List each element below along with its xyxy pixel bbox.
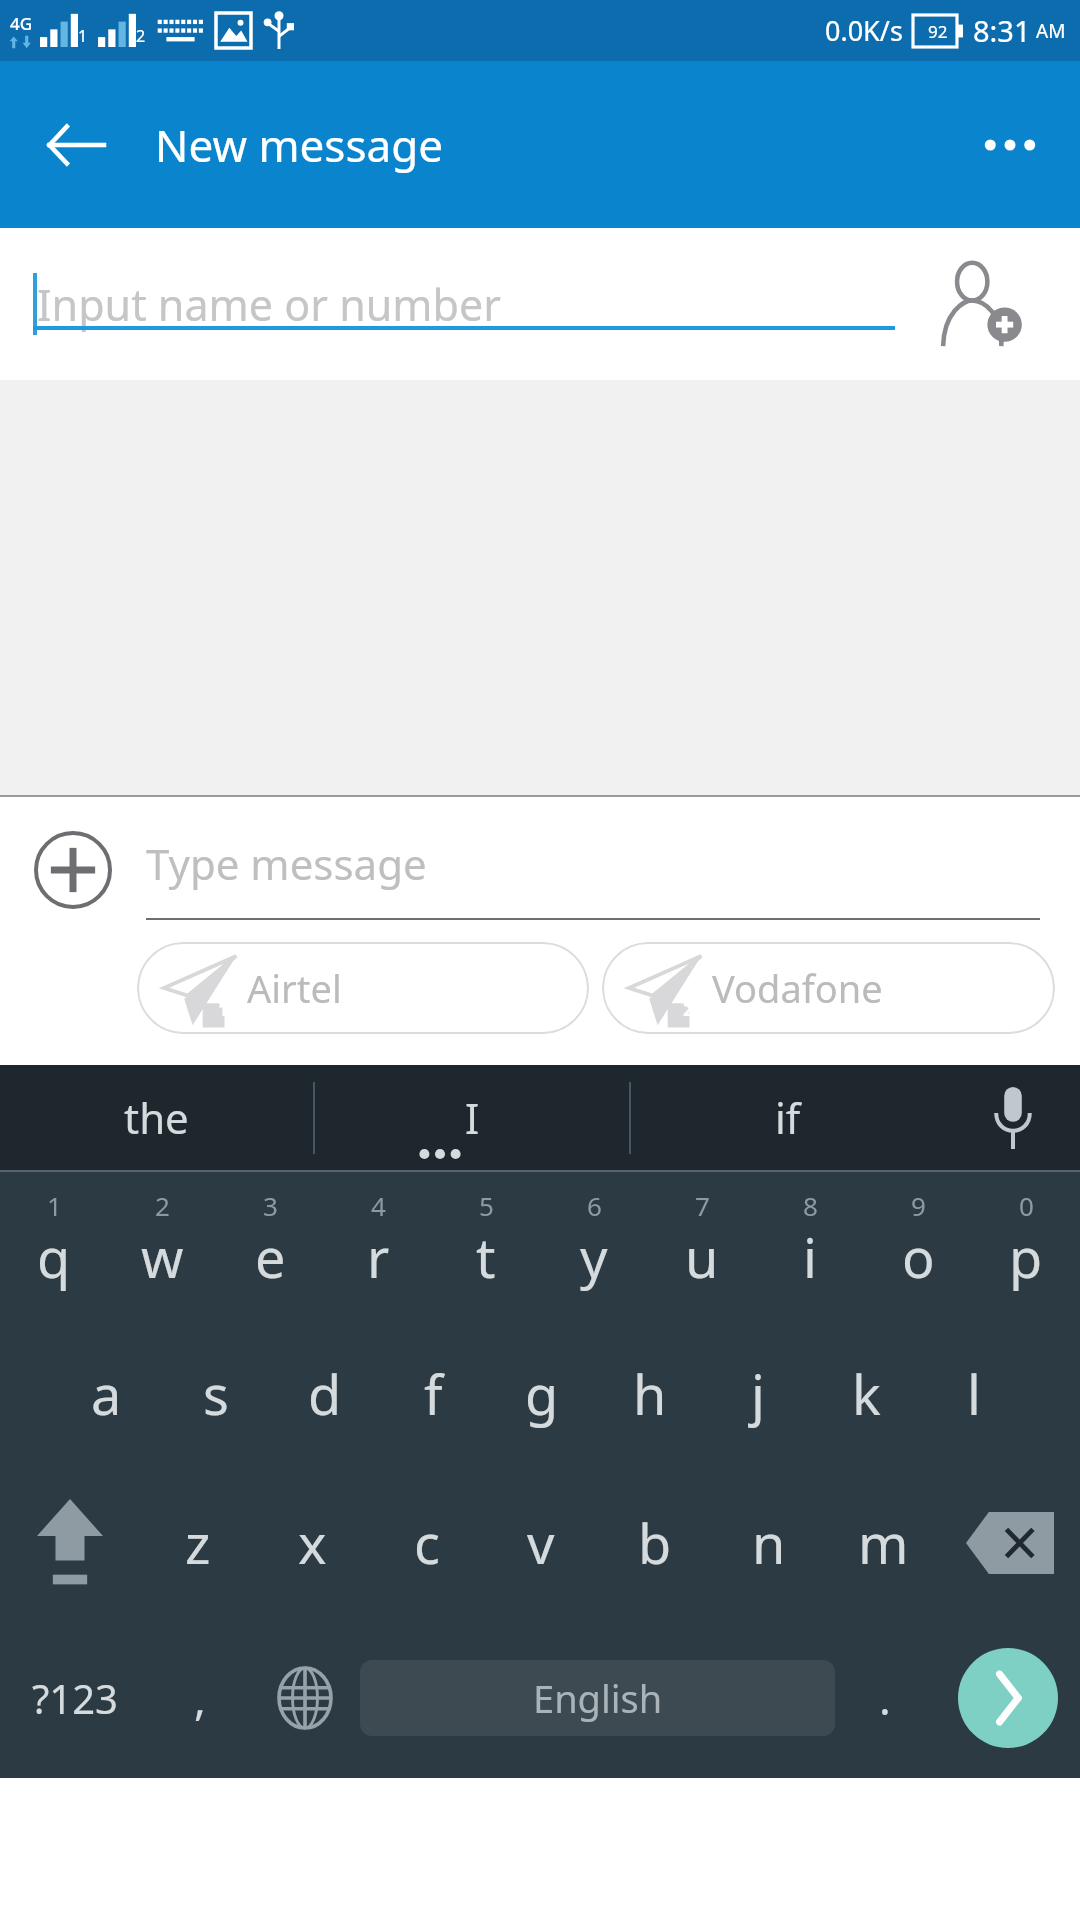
button[interactable]: 4 <box>324 1172 432 1320</box>
button[interactable]: Change language <box>250 1618 360 1778</box>
staticText: 4 <box>371 1188 386 1223</box>
staticText: t <box>476 1220 496 1294</box>
button[interactable]: d <box>270 1320 379 1468</box>
staticText: a <box>91 1357 122 1431</box>
staticText: 0 <box>1019 1188 1034 1223</box>
staticText: v <box>527 1506 555 1580</box>
staticText: h <box>633 1357 667 1431</box>
staticText: 92 <box>928 20 948 43</box>
button[interactable]: 2 <box>108 1172 216 1320</box>
button[interactable]: Back <box>30 100 120 190</box>
staticText: o <box>902 1220 935 1294</box>
staticText: x <box>298 1506 327 1580</box>
staticText: 5 <box>479 1188 494 1223</box>
button[interactable]: 2 <box>602 942 1055 1034</box>
staticText: s <box>203 1357 229 1431</box>
button[interactable]: if <box>631 1065 945 1170</box>
button[interactable]: Input name or number <box>33 273 895 335</box>
staticText: Vodafone <box>712 962 883 1014</box>
staticText: 2 <box>155 1188 170 1223</box>
button[interactable]: 9 <box>864 1172 972 1320</box>
button[interactable]: j <box>704 1320 812 1468</box>
button[interactable]: ?123 <box>0 1618 150 1778</box>
button[interactable]: 7 <box>648 1172 756 1320</box>
button[interactable]: 0 <box>972 1172 1080 1320</box>
button[interactable]: b <box>598 1468 712 1618</box>
button[interactable]: x <box>255 1468 370 1618</box>
staticText: 8:31 <box>973 11 1031 50</box>
staticText: 9 <box>911 1188 926 1223</box>
button[interactable]: 6 <box>540 1172 648 1320</box>
staticText: New message <box>155 115 444 175</box>
button[interactable]: Voice input <box>945 1065 1080 1170</box>
button[interactable]: c <box>370 1468 484 1618</box>
staticText: 0.0K/s <box>825 12 903 49</box>
staticText: n <box>752 1506 786 1580</box>
staticText: f <box>424 1357 443 1431</box>
staticText: j <box>751 1357 765 1431</box>
button[interactable]: 1 <box>0 1172 108 1320</box>
staticText: c <box>414 1506 440 1580</box>
staticText: g <box>525 1357 559 1431</box>
staticText: 2 <box>683 997 694 1022</box>
staticText: AM <box>1036 18 1066 44</box>
button[interactable]: Backspace <box>940 1468 1080 1618</box>
staticText: if <box>775 1089 801 1146</box>
button[interactable]: k <box>812 1320 920 1468</box>
button[interactable]: 5 <box>432 1172 540 1320</box>
button[interactable]: Shift <box>0 1468 140 1618</box>
staticText: Type message <box>146 835 427 892</box>
staticText: i <box>803 1220 817 1294</box>
button[interactable]: Type message <box>146 797 1040 942</box>
button[interactable]: Add attachment <box>28 825 118 915</box>
button[interactable]: a <box>52 1320 161 1468</box>
button[interactable]: 8 <box>756 1172 864 1320</box>
button[interactable]: 3 <box>216 1172 324 1320</box>
button[interactable]: I <box>315 1065 629 1170</box>
staticText: e <box>255 1220 286 1294</box>
button[interactable]: Add contact <box>925 249 1035 359</box>
button[interactable]: z <box>140 1468 255 1618</box>
staticText: l <box>967 1357 981 1431</box>
button[interactable]: m <box>826 1468 940 1618</box>
button[interactable]: the <box>0 1065 313 1170</box>
staticText: b <box>638 1506 672 1580</box>
staticText: Input name or number <box>37 275 501 334</box>
button[interactable]: n <box>712 1468 826 1618</box>
button[interactable]: l <box>920 1320 1028 1468</box>
staticText: q <box>37 1220 71 1294</box>
staticText: I <box>465 1089 480 1146</box>
staticText: 6 <box>587 1188 602 1223</box>
staticText: 2 <box>136 25 146 47</box>
button[interactable]: , <box>150 1618 250 1778</box>
staticText: 7 <box>695 1188 710 1223</box>
staticText: ?123 <box>32 1671 118 1725</box>
staticText: 8 <box>803 1188 818 1223</box>
button[interactable]: More options <box>965 100 1055 190</box>
button[interactable]: h <box>596 1320 704 1468</box>
staticText: r <box>367 1220 390 1294</box>
staticText: u <box>685 1220 719 1294</box>
button[interactable]: g <box>488 1320 596 1468</box>
staticText: , <box>194 1668 206 1728</box>
staticText: m <box>858 1506 909 1580</box>
button[interactable]: 1 <box>137 942 589 1034</box>
button[interactable]: s <box>161 1320 270 1468</box>
button[interactable]: Send <box>958 1648 1058 1748</box>
staticText: the <box>124 1089 189 1146</box>
staticText: w <box>141 1220 184 1294</box>
staticText: English <box>533 1672 663 1724</box>
button[interactable]: English <box>360 1660 835 1736</box>
button[interactable]: . <box>835 1618 935 1778</box>
staticText: d <box>308 1357 342 1431</box>
staticText: 1 <box>218 997 229 1022</box>
staticText: y <box>580 1220 608 1294</box>
staticText: Airtel <box>247 962 342 1014</box>
staticText: 4G <box>10 12 33 35</box>
staticText: 1 <box>47 1188 62 1223</box>
button[interactable]: v <box>484 1468 598 1618</box>
staticText: . <box>879 1668 891 1728</box>
staticText: k <box>852 1357 881 1431</box>
button[interactable]: f <box>379 1320 488 1468</box>
staticText: 1 <box>78 25 88 47</box>
